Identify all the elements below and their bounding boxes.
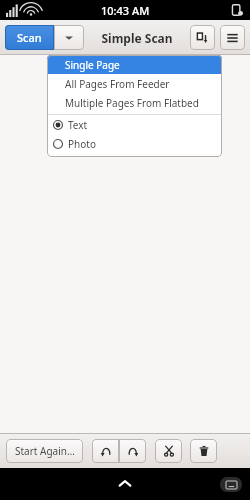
staticText: All Pages From Feeder xyxy=(65,77,170,91)
button[interactable]: All Pages From Feeder xyxy=(47,74,222,93)
staticText: Photo xyxy=(68,137,96,151)
button[interactable]: Rotate right xyxy=(119,439,146,463)
button[interactable]: Scan options xyxy=(54,25,84,50)
button[interactable]: Rotate left xyxy=(92,439,119,463)
staticText: 10:43 AM xyxy=(101,3,150,18)
staticText: Multiple Pages From Flatbed xyxy=(65,96,199,110)
button[interactable]: Crop xyxy=(155,439,182,463)
button[interactable]: Back xyxy=(108,468,142,500)
button[interactable]: Text xyxy=(47,115,222,134)
button[interactable]: Multiple Pages From Flatbed xyxy=(47,93,222,112)
button[interactable]: Start Again… xyxy=(6,439,83,463)
staticText: Start Again… xyxy=(15,444,75,458)
staticText: Single Page xyxy=(65,58,120,72)
button[interactable]: Single Page xyxy=(47,55,222,74)
button[interactable]: Save document xyxy=(190,25,215,50)
button[interactable]: Menu xyxy=(220,25,245,50)
button[interactable]: Scan xyxy=(5,25,54,50)
staticText: Simple Scan xyxy=(101,30,173,46)
button[interactable]: Delete page xyxy=(190,439,217,463)
button[interactable]: Keyboard xyxy=(220,477,242,492)
staticText: Scan xyxy=(17,30,42,45)
staticText: Text xyxy=(68,118,88,132)
button[interactable]: Photo xyxy=(47,134,222,153)
